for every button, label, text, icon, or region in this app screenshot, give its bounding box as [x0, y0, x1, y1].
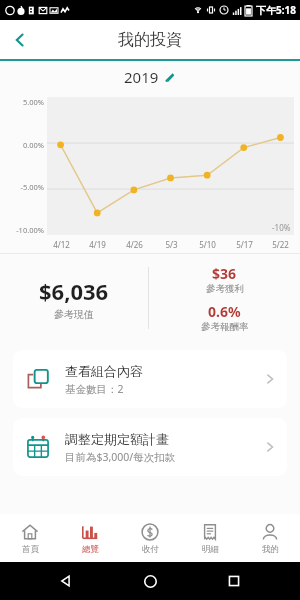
staticText: -5.00%	[20, 182, 44, 192]
staticText: 5.00%	[22, 97, 44, 107]
button[interactable]: 總覽	[60, 514, 120, 562]
staticText: 2019	[124, 67, 159, 87]
staticText: 我的投資	[118, 30, 182, 50]
button[interactable]: 我的	[240, 514, 300, 562]
staticText: $36	[212, 264, 237, 283]
button[interactable]: Home	[132, 563, 168, 599]
staticText: 0.6%	[208, 302, 241, 321]
staticText: 5/22	[272, 239, 289, 250]
staticText: 5/10	[199, 239, 216, 250]
staticText: 查看組合內容	[65, 363, 143, 379]
staticText: 調整定期定額計畫	[65, 431, 169, 447]
staticText: 4/19	[89, 239, 106, 250]
staticText: 目前為$3,000/每次扣款	[65, 450, 176, 464]
staticText: 總覽	[82, 544, 99, 555]
button[interactable]: 調整定期定額計畫	[13, 418, 287, 476]
button[interactable]: 2019	[0, 61, 300, 93]
staticText: 參考獲利	[206, 283, 244, 295]
staticText: $6,036	[39, 276, 109, 306]
button[interactable]: Back	[48, 563, 84, 599]
staticText: 4/26	[126, 239, 143, 250]
staticText: 參考現值	[54, 308, 94, 321]
staticText: -10.00%	[16, 225, 44, 235]
button[interactable]: 收付	[120, 514, 180, 562]
button[interactable]: 首頁	[0, 514, 60, 562]
staticText: 0.00%	[22, 140, 44, 150]
staticText: 基金數目：2	[65, 382, 124, 396]
staticText: 4/12	[53, 239, 70, 250]
button[interactable]: Recents	[216, 563, 252, 599]
button[interactable]: Back	[0, 20, 40, 59]
staticText: 明細	[202, 544, 219, 555]
staticText: 5/3	[165, 239, 178, 250]
staticText: 首頁	[22, 544, 39, 555]
button[interactable]: 查看組合內容	[13, 350, 287, 408]
staticText: 參考報酬率	[201, 321, 249, 333]
staticText: 下午5:18	[256, 3, 296, 17]
staticText: 收付	[142, 544, 159, 555]
staticText: 我的	[262, 544, 279, 555]
staticText: -10%	[272, 222, 291, 233]
staticText: 5/17	[236, 239, 253, 250]
button[interactable]: 明細	[180, 514, 240, 562]
